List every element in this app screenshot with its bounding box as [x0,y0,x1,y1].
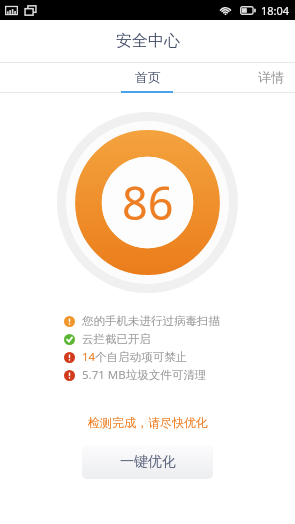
staticText: 您的手机未进行过病毒扫描 [82,314,220,328]
staticText: 安全中心 [116,31,180,51]
staticText: 86 [122,172,174,233]
staticText: 首页 [135,69,161,85]
button[interactable]: 您的手机未进行过病毒扫描 [64,313,295,329]
button[interactable]: 14个自启动项可禁止 [64,349,295,365]
button[interactable]: 首页 [116,63,180,91]
staticText: 18:04 [261,3,290,18]
other: Recent apps [24,4,37,17]
other: Screenshot [5,4,18,17]
button[interactable]: 5.71 MB垃圾文件可清理 [64,367,295,383]
button[interactable]: 详情 [247,63,295,91]
staticText: 详情 [258,69,284,85]
staticText: 14个自启动项可禁止 [82,349,188,365]
staticText: 云拦截已开启 [82,332,151,346]
other: Battery [240,6,256,15]
staticText: 一键优化 [120,453,176,471]
staticText: 5.71 MB垃圾文件可清理 [82,367,207,383]
button[interactable]: 云拦截已开启 [64,331,295,347]
button[interactable]: Security score 86 [57,112,238,293]
button[interactable]: 一键优化 [82,445,213,479]
other: Wi-Fi [219,4,232,17]
staticText: 检测完成，请尽快优化 [88,415,208,430]
